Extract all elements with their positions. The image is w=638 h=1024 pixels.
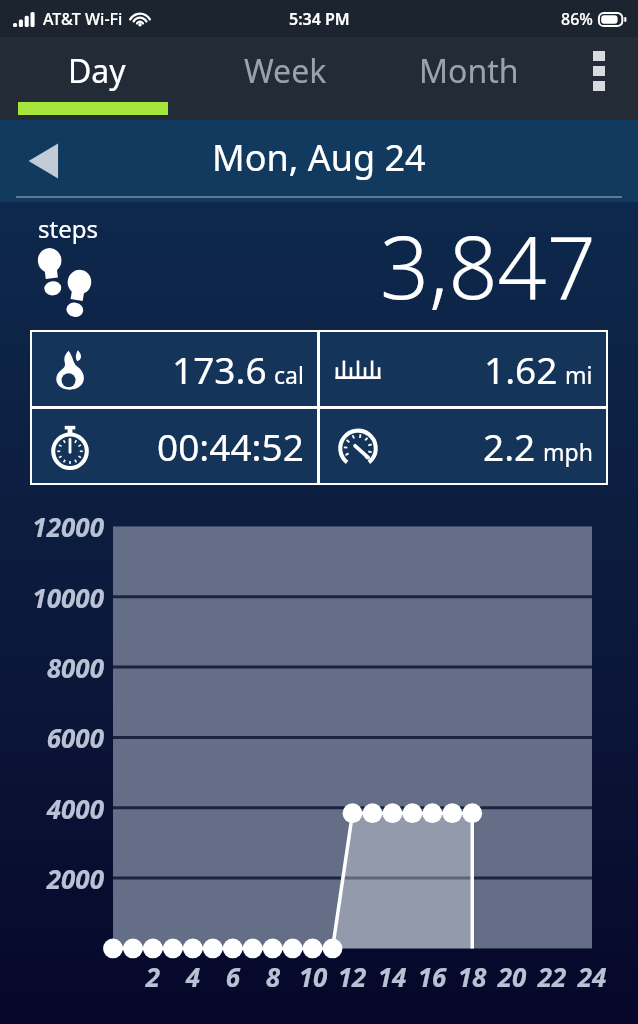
staticText: mph [543,436,593,467]
staticText: Month [419,49,519,93]
staticText: 24 [562,959,622,994]
button[interactable]: Distance [320,332,606,406]
staticText: 8 [243,959,303,994]
staticText: 2 [123,959,183,994]
staticText: 12000 [0,509,104,544]
staticText: 16 [402,959,462,994]
staticText: 8000 [0,650,104,685]
staticText: Week [244,49,327,93]
button[interactable]: Previous day [24,136,70,186]
button[interactable]: Speed [320,409,606,483]
staticText: AT&T Wi-Fi [43,8,123,30]
staticText: 2000 [0,861,104,896]
staticText: 3,847 [380,207,596,324]
staticText: 20 [482,959,542,994]
button[interactable]: More options [560,37,638,105]
button[interactable]: Day [0,37,194,105]
staticText: 12 [322,959,382,994]
button[interactable]: Week [194,37,377,105]
staticText: mi [565,359,593,390]
staticText: 6 [203,959,263,994]
staticText: 10 [283,959,343,994]
staticText: cal [274,359,304,390]
staticText: 1.62 [484,344,558,394]
staticText: 4 [163,959,223,994]
button[interactable]: Calories [32,332,317,406]
staticText: Day [68,49,126,93]
staticText: Mon, Aug 24 [212,133,426,182]
staticText: 6000 [0,720,104,755]
staticText: 18 [442,959,502,994]
button[interactable]: Month [377,37,560,105]
staticText: 173.6 [172,344,267,394]
staticText: 5:34 PM [289,8,350,30]
button[interactable]: Duration [32,409,317,483]
staticText: 00:44:52 [157,421,304,471]
staticText: 22 [522,959,582,994]
staticText: 14 [362,959,422,994]
staticText: 86% [561,8,593,30]
staticText: 2.2 [483,421,536,471]
staticText: 10000 [0,580,104,615]
staticText: steps [38,212,98,245]
staticText: 4000 [0,791,104,826]
